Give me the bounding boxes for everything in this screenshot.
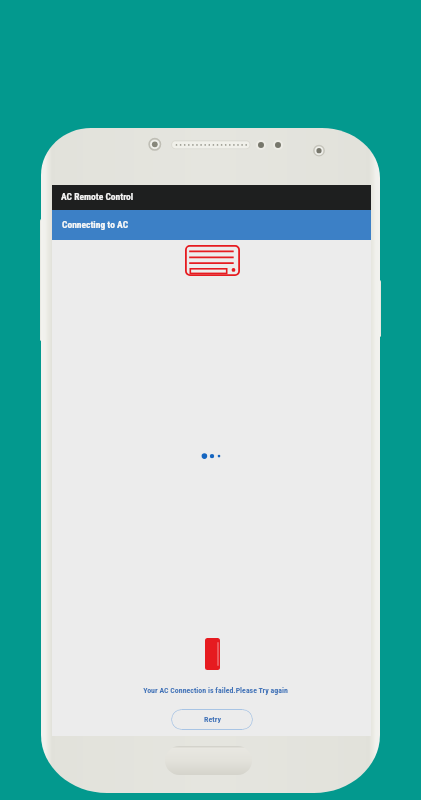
other: Remote bbox=[205, 638, 220, 670]
button[interactable]: Volume bbox=[40, 219, 44, 341]
staticText: Your AC Connection is failed.Please Try … bbox=[143, 686, 288, 695]
staticText: AC Remote Control bbox=[61, 191, 134, 202]
staticText: Connecting to AC bbox=[62, 219, 129, 230]
staticText: Retry bbox=[204, 715, 221, 724]
button[interactable]: Home bbox=[165, 746, 252, 775]
other: Air conditioner bbox=[185, 245, 240, 276]
button[interactable]: Retry bbox=[171, 709, 253, 730]
button[interactable]: AC Remote Control bbox=[52, 185, 371, 210]
button[interactable]: Power bbox=[374, 280, 381, 337]
button[interactable]: Connecting to AC bbox=[52, 210, 371, 240]
